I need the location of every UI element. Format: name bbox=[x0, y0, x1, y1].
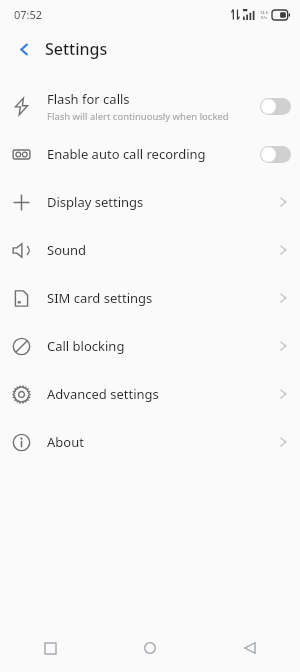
button[interactable]: Display settings bbox=[0, 178, 300, 226]
button[interactable]: Home bbox=[100, 624, 200, 672]
button[interactable]: Enable auto call recording bbox=[260, 146, 291, 163]
staticText: Sound bbox=[47, 241, 280, 259]
staticText: Advanced settings bbox=[47, 385, 280, 403]
button[interactable]: Flash for calls bbox=[0, 82, 300, 130]
button[interactable]: SIM card settings bbox=[0, 274, 300, 322]
staticText: Flash will alert continuously when locke… bbox=[47, 110, 229, 123]
button[interactable]: Back bbox=[200, 624, 300, 672]
staticText: Settings bbox=[45, 38, 108, 60]
staticText: Enable auto call recording bbox=[47, 145, 206, 163]
staticText: 07:52 bbox=[14, 7, 43, 22]
button[interactable]: Flash for calls bbox=[260, 98, 291, 115]
button[interactable]: Advanced settings bbox=[0, 370, 300, 418]
staticText: Display settings bbox=[47, 193, 280, 211]
staticText: SIM card settings bbox=[47, 289, 280, 307]
button[interactable]: Sound bbox=[0, 226, 300, 274]
staticText: Flash for calls bbox=[47, 90, 130, 108]
staticText: 14.6 bbox=[260, 10, 268, 15]
staticText: K/s bbox=[261, 15, 267, 20]
button[interactable]: Recents bbox=[0, 624, 100, 672]
button[interactable]: About bbox=[0, 418, 300, 466]
button[interactable]: Enable auto call recording bbox=[0, 130, 300, 178]
staticText: About bbox=[47, 433, 280, 451]
staticText: Call blocking bbox=[47, 337, 280, 355]
button[interactable]: Call blocking bbox=[0, 322, 300, 370]
button[interactable]: Back bbox=[8, 33, 40, 65]
